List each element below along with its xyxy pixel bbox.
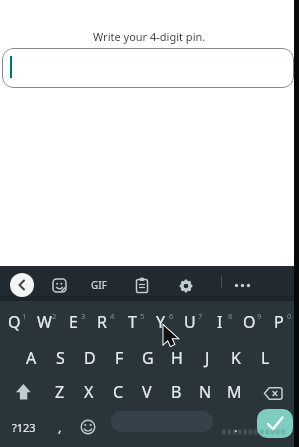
staticText: 2 bbox=[52, 311, 57, 321]
staticText: C bbox=[113, 381, 124, 403]
staticText: H bbox=[171, 347, 183, 369]
button[interactable]: S bbox=[46, 344, 74, 372]
button[interactable]: , bbox=[46, 413, 74, 441]
staticText: F bbox=[115, 347, 124, 369]
staticText: R bbox=[97, 311, 107, 333]
button[interactable]: R bbox=[88, 308, 116, 336]
button[interactable]: G bbox=[134, 344, 162, 372]
staticText: B bbox=[171, 381, 182, 403]
button[interactable]: F bbox=[105, 344, 133, 372]
button[interactable]: Z bbox=[46, 378, 74, 406]
staticText: D bbox=[84, 347, 96, 369]
staticText: 1 bbox=[22, 311, 27, 321]
staticText: 0 bbox=[287, 311, 292, 321]
staticText: GIF bbox=[91, 278, 108, 292]
button[interactable] bbox=[13, 381, 35, 401]
button[interactable] bbox=[79, 418, 97, 436]
button[interactable]: A bbox=[17, 344, 45, 372]
button[interactable] bbox=[232, 277, 253, 293]
staticText: 7 bbox=[198, 311, 203, 321]
button[interactable]: M bbox=[220, 378, 248, 406]
button[interactable]: U bbox=[176, 308, 204, 336]
staticText: T bbox=[128, 311, 137, 333]
button[interactable] bbox=[257, 409, 293, 438]
staticText: Write your 4-digit pin. bbox=[93, 29, 206, 44]
staticText: K bbox=[231, 347, 241, 369]
button[interactable]: C bbox=[104, 378, 132, 406]
staticText: A bbox=[26, 347, 37, 369]
button[interactable] bbox=[10, 273, 34, 297]
staticText: Q bbox=[8, 311, 21, 333]
button[interactable]: ?123 bbox=[7, 413, 41, 441]
button[interactable]: GIF bbox=[84, 276, 114, 294]
staticText: 4 bbox=[110, 311, 115, 321]
button[interactable]: . bbox=[222, 413, 250, 441]
staticText: . bbox=[234, 418, 238, 436]
button[interactable]: Y bbox=[147, 308, 175, 336]
staticText: X bbox=[84, 381, 94, 403]
button[interactable] bbox=[0, 266, 299, 296]
button[interactable]: B bbox=[162, 378, 190, 406]
button[interactable]: V bbox=[133, 378, 161, 406]
button[interactable]: Q bbox=[0, 308, 28, 336]
staticText: 8 bbox=[228, 311, 233, 321]
button[interactable]: L bbox=[251, 344, 279, 372]
staticText: G bbox=[142, 347, 154, 369]
staticText: S bbox=[56, 347, 65, 369]
staticText: Y bbox=[156, 311, 166, 333]
button[interactable]: W bbox=[30, 308, 58, 336]
staticText: N bbox=[199, 381, 212, 403]
staticText: , bbox=[58, 418, 62, 436]
button[interactable]: T bbox=[118, 308, 146, 336]
button[interactable] bbox=[178, 278, 194, 294]
staticText: I bbox=[217, 311, 223, 333]
button[interactable] bbox=[263, 385, 284, 402]
staticText: V bbox=[142, 381, 152, 403]
button[interactable]: H bbox=[163, 344, 191, 372]
staticText: O bbox=[243, 311, 256, 333]
button[interactable]: K bbox=[222, 344, 250, 372]
staticText: L bbox=[261, 347, 270, 369]
staticText: 3 bbox=[81, 311, 86, 321]
button[interactable] bbox=[2, 48, 294, 88]
staticText: W bbox=[37, 311, 52, 333]
staticText: ?123 bbox=[12, 420, 36, 435]
staticText: P bbox=[274, 311, 284, 333]
staticText: 9 bbox=[257, 311, 262, 321]
button[interactable] bbox=[134, 277, 150, 293]
staticText: M bbox=[227, 381, 242, 403]
button[interactable]: P bbox=[265, 308, 293, 336]
button[interactable] bbox=[52, 278, 67, 293]
button[interactable]: O bbox=[235, 308, 263, 336]
button[interactable]: J bbox=[193, 344, 221, 372]
button[interactable]: N bbox=[191, 378, 219, 406]
staticText: J bbox=[205, 347, 210, 369]
staticText: Z bbox=[55, 381, 65, 403]
button[interactable]: E bbox=[59, 308, 87, 336]
staticText: 6 bbox=[169, 311, 174, 321]
button[interactable]: I bbox=[206, 308, 234, 336]
staticText: 5 bbox=[140, 311, 145, 321]
staticText: U bbox=[184, 311, 196, 333]
staticText: E bbox=[69, 311, 78, 333]
button[interactable]: X bbox=[75, 378, 103, 406]
button[interactable]: D bbox=[76, 344, 104, 372]
